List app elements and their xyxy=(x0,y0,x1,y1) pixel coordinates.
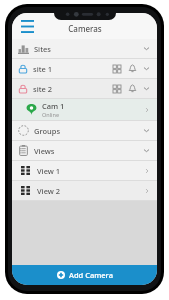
staticText: View 1 xyxy=(37,166,61,176)
button[interactable]: Sites xyxy=(12,39,157,58)
button[interactable]: site 2 xyxy=(12,79,157,98)
staticText: Online xyxy=(42,111,60,118)
staticText: Add Camera xyxy=(69,270,113,280)
staticText: site 2 xyxy=(33,84,53,94)
button[interactable]: Grid layout xyxy=(110,82,123,95)
button[interactable]: View 1 xyxy=(12,161,157,180)
staticText: Groups xyxy=(34,126,61,136)
button[interactable]: Cam 1 xyxy=(12,99,157,120)
staticText: Cameras xyxy=(68,23,102,34)
button[interactable]: site 1 xyxy=(12,59,157,78)
staticText: View 2 xyxy=(37,186,61,196)
button[interactable]: Groups xyxy=(12,121,157,140)
button[interactable]: Grid layout xyxy=(110,62,123,75)
staticText: Cam 1 xyxy=(42,101,65,111)
button[interactable]: Add Camera xyxy=(12,265,157,285)
staticText: site 1 xyxy=(33,64,53,74)
button[interactable]: Views xyxy=(12,141,157,160)
button[interactable]: Open navigation menu xyxy=(16,15,38,37)
button[interactable]: View 2 xyxy=(12,181,157,200)
button[interactable]: Notifications xyxy=(126,82,139,95)
button[interactable]: Notifications xyxy=(126,62,139,75)
staticText: Views xyxy=(34,146,55,156)
staticText: Sites xyxy=(34,44,51,54)
